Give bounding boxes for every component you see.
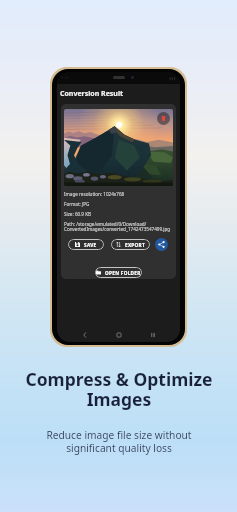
staticText: Image resolution: 1024x768 [64,191,125,197]
staticText: Compress & Optimize Images [25,367,213,411]
button[interactable]: SAVE [68,239,104,250]
button[interactable]: OPEN FOLDER [95,267,142,278]
staticText: SAVE [84,242,97,248]
staticText: EXPORT [125,242,145,248]
button[interactable]: Back [78,328,91,341]
staticText: ▮▮▮ [169,76,176,81]
button[interactable]: Recents [146,328,159,341]
button[interactable]: EXPORT [111,239,150,250]
staticText: OPEN FOLDER [105,270,141,276]
button[interactable]: Home [112,328,125,341]
staticText: Size: 60.9 KB [64,211,92,217]
button[interactable]: Delete [157,112,170,125]
staticText: Format: JPG [64,201,90,207]
staticText: Reduce image file size without significa… [46,428,192,455]
staticText: Path: /storage/emulated/0/Download/ Conv… [64,221,171,232]
staticText: 9:41 [61,75,70,81]
button[interactable]: Share [155,238,168,251]
staticText: Conversion Result [60,89,124,99]
